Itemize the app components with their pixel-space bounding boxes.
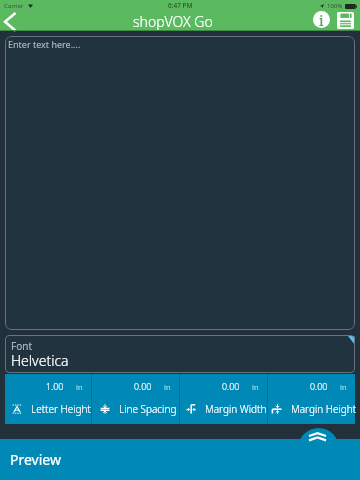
button[interactable]: Preview bbox=[0, 439, 360, 480]
staticText: Enter text here.... bbox=[8, 38, 81, 50]
staticText: Preview bbox=[10, 450, 61, 469]
staticText: shopVOX Go bbox=[133, 12, 213, 30]
staticText: 6:47 PM bbox=[168, 1, 193, 10]
button[interactable]: Save bbox=[337, 12, 354, 29]
button[interactable]: Info bbox=[313, 11, 330, 28]
staticText: Carrier bbox=[4, 2, 24, 10]
staticText: i bbox=[319, 11, 324, 28]
staticText: Font bbox=[11, 339, 33, 353]
button[interactable]: 0.00 bbox=[268, 374, 355, 424]
staticText: Line Spacing bbox=[119, 402, 177, 416]
staticText: Letter Height bbox=[31, 402, 91, 416]
button[interactable]: Expand bbox=[298, 428, 339, 469]
staticText: in bbox=[340, 382, 347, 392]
staticText: 100% bbox=[327, 2, 343, 10]
button[interactable]: Back bbox=[0, 8, 26, 26]
staticText: 0.00 bbox=[310, 381, 328, 393]
staticText: 0.00 bbox=[222, 381, 240, 393]
staticText: in bbox=[76, 382, 83, 392]
staticText: Margin Width bbox=[205, 402, 267, 416]
staticText: 0.00 bbox=[134, 381, 152, 393]
staticText: Helvetica bbox=[11, 351, 69, 370]
staticText: Margin Height bbox=[291, 402, 357, 416]
button[interactable]: 1.00 bbox=[5, 374, 91, 424]
button[interactable]: 0.00 bbox=[180, 374, 267, 424]
button[interactable]: Enter text here.... bbox=[5, 36, 355, 330]
staticText: in bbox=[252, 382, 259, 392]
button[interactable]: 0.00 bbox=[92, 374, 179, 424]
staticText: 1.00 bbox=[46, 381, 64, 393]
staticText: in bbox=[164, 382, 171, 392]
button[interactable]: Font bbox=[5, 335, 355, 373]
